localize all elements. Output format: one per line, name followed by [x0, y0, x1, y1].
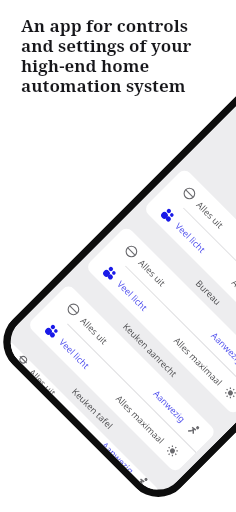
- staticText: Alles uit: [194, 198, 227, 231]
- button[interactable]: Veel licht: [85, 246, 180, 341]
- button[interactable]: Aanwezig: [122, 358, 217, 452]
- staticText: Alles uit: [30, 366, 59, 396]
- staticText: Veel licht: [173, 220, 208, 255]
- button[interactable]: Aanwezig: [180, 300, 236, 394]
- button[interactable]: Alles maximaal: [159, 321, 236, 416]
- staticText: Veel licht: [115, 278, 151, 313]
- staticText: Keuken aanrecht: [121, 320, 180, 379]
- button[interactable]: Alles uit: [164, 167, 236, 262]
- button[interactable]: Alles uit: [48, 283, 143, 378]
- staticText: Alles maximaal: [114, 392, 167, 446]
- button[interactable]: Alles maximaal: [101, 379, 196, 474]
- staticText: Aanwezig: [102, 439, 137, 473]
- button[interactable]: Alles maximaal: [217, 263, 236, 358]
- staticText: Veel licht: [57, 336, 93, 371]
- staticText: Alles uit: [136, 256, 169, 289]
- staticText: Bureau: [194, 277, 224, 307]
- staticText: Aanwezig: [151, 387, 189, 425]
- staticText: Alles maximaal: [230, 276, 236, 330]
- staticText: Alles maximaal: [172, 334, 225, 388]
- button[interactable]: Alles uit: [106, 225, 201, 320]
- staticText: Alles uit: [78, 314, 111, 347]
- staticText: Keuken tafel: [70, 385, 116, 431]
- button[interactable]: Veel licht: [27, 304, 122, 399]
- button[interactable]: Aanwezig: [79, 415, 159, 495]
- staticText: An app for controls and settings of your…: [21, 14, 192, 97]
- button[interactable]: Alles uit: [5, 341, 85, 421]
- button[interactable]: Veel licht: [143, 189, 236, 283]
- staticText: Aanwezig: [209, 329, 236, 367]
